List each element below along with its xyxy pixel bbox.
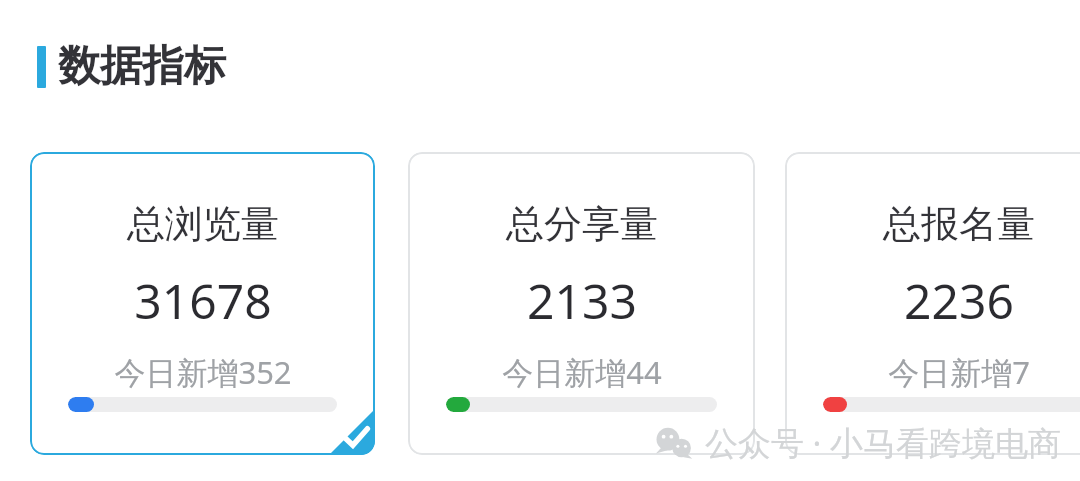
staticText: 总分享量 bbox=[506, 200, 658, 248]
staticText: 2133 bbox=[527, 268, 637, 333]
staticText: 2236 bbox=[904, 268, 1014, 333]
button[interactable]: 数据指标 bbox=[37, 40, 226, 93]
button[interactable]: 总分享量 bbox=[408, 152, 755, 455]
button[interactable]: 总报名量 bbox=[785, 152, 1080, 455]
staticText: 数据指标 bbox=[58, 40, 226, 93]
staticText: 总报名量 bbox=[883, 200, 1035, 248]
staticText: 公众号 · 小马看跨境电商 bbox=[705, 420, 1062, 465]
staticText: 今日新增352 bbox=[114, 351, 292, 393]
other: Selected bbox=[329, 409, 375, 455]
staticText: 31678 bbox=[134, 268, 272, 333]
button[interactable]: 总浏览量 bbox=[30, 152, 375, 455]
staticText: 今日新增44 bbox=[502, 351, 662, 393]
staticText: 总浏览量 bbox=[127, 200, 279, 248]
staticText: 今日新增7 bbox=[888, 351, 1030, 393]
